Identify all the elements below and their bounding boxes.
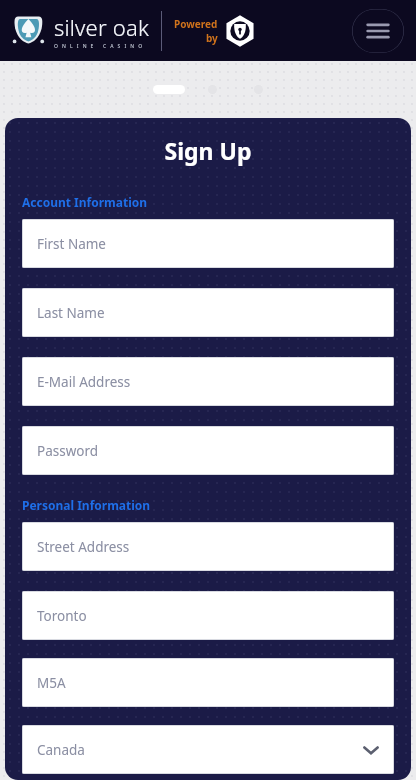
staticText: M5A <box>37 674 66 692</box>
staticText: by <box>206 31 218 45</box>
button[interactable]: E-Mail Address <box>22 357 394 406</box>
staticText: Sign Up <box>5 135 411 166</box>
staticText: Password <box>37 442 99 460</box>
staticText: Last Name <box>37 304 105 322</box>
staticText: Canada <box>37 741 85 759</box>
button[interactable]: Page 1 <box>153 85 185 94</box>
staticText: E-Mail Address <box>37 373 131 391</box>
staticText: O N L I N E C A S I N O <box>54 43 144 50</box>
button[interactable]: Last Name <box>22 288 394 337</box>
button[interactable]: Toronto <box>22 591 394 640</box>
staticText: First Name <box>37 235 106 253</box>
button[interactable]: First Name <box>22 219 394 268</box>
button[interactable]: Menu <box>352 9 404 53</box>
staticText: Account Information <box>22 194 148 210</box>
staticText: Toronto <box>37 607 87 625</box>
staticText: Powered <box>174 17 218 31</box>
staticText: Street Address <box>37 538 130 556</box>
button[interactable]: Canada <box>22 725 394 774</box>
button[interactable]: Password <box>22 426 394 475</box>
staticText: Personal Information <box>22 497 151 513</box>
button[interactable]: M5A <box>22 658 394 707</box>
button[interactable]: Street Address <box>22 522 394 571</box>
staticText: silver oak <box>54 12 149 42</box>
